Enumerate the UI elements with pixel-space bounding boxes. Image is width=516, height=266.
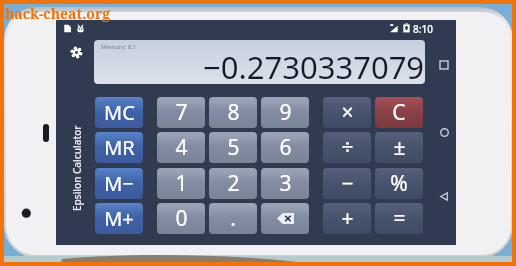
button[interactable]: Recents	[430, 51, 458, 79]
other: Backspace	[277, 213, 294, 224]
staticText: ×	[341, 98, 354, 127]
button[interactable]: Memory: 8.1	[94, 40, 425, 84]
staticText: MC	[104, 99, 135, 126]
button[interactable]: 5	[209, 132, 257, 163]
staticText: 8:10	[413, 22, 433, 36]
button[interactable]: Settings	[64, 40, 88, 64]
button[interactable]: MC	[95, 97, 143, 128]
staticText: −	[341, 169, 354, 198]
staticText: =	[393, 204, 406, 233]
button[interactable]: 3	[261, 168, 309, 199]
staticText: 1	[175, 169, 188, 198]
staticText: 5	[227, 133, 240, 162]
button[interactable]: %	[375, 168, 423, 199]
button[interactable]: −	[323, 168, 371, 199]
staticText: M−	[104, 170, 134, 197]
button[interactable]: ±	[375, 132, 423, 163]
staticText: 3	[279, 169, 292, 198]
button[interactable]: 6	[261, 132, 309, 163]
button[interactable]: Back	[430, 182, 458, 210]
staticText: %	[390, 169, 408, 198]
button[interactable]: M−	[95, 168, 143, 199]
button[interactable]: Backspace	[261, 203, 309, 234]
staticText: .	[230, 204, 236, 233]
staticText: 0	[175, 204, 188, 233]
button[interactable]: 9	[261, 97, 309, 128]
button[interactable]: C	[375, 97, 423, 128]
button[interactable]: +	[323, 203, 371, 234]
button[interactable]: 2	[209, 168, 257, 199]
staticText: ±	[393, 133, 406, 162]
button[interactable]: ×	[323, 97, 371, 128]
staticText: 9	[279, 98, 292, 127]
staticText: ÷	[341, 133, 354, 162]
staticText: 7	[175, 98, 188, 127]
button[interactable]: M+	[95, 203, 143, 234]
staticText: hack-cheat.org	[5, 4, 111, 23]
staticText: 8	[227, 98, 240, 127]
staticText: −0.2730337079	[203, 46, 425, 84]
button[interactable]: Home	[430, 118, 458, 146]
button[interactable]: 1	[157, 168, 205, 199]
staticText: 4	[175, 133, 188, 162]
staticText: Epsilon Calculator	[70, 125, 84, 211]
staticText: MR	[104, 134, 135, 161]
button[interactable]: .	[209, 203, 257, 234]
button[interactable]: =	[375, 203, 423, 234]
button[interactable]: 0	[157, 203, 205, 234]
staticText: +	[341, 204, 354, 233]
staticText: 2	[227, 169, 240, 198]
button[interactable]: 7	[157, 97, 205, 128]
button[interactable]: ÷	[323, 132, 371, 163]
staticText: M+	[104, 205, 134, 232]
button[interactable]: 4	[157, 132, 205, 163]
staticText: Memory: 8.1	[101, 43, 137, 51]
button[interactable]: MR	[95, 132, 143, 163]
staticText: C	[392, 98, 406, 127]
staticText: 6	[279, 133, 292, 162]
button[interactable]: 8	[209, 97, 257, 128]
